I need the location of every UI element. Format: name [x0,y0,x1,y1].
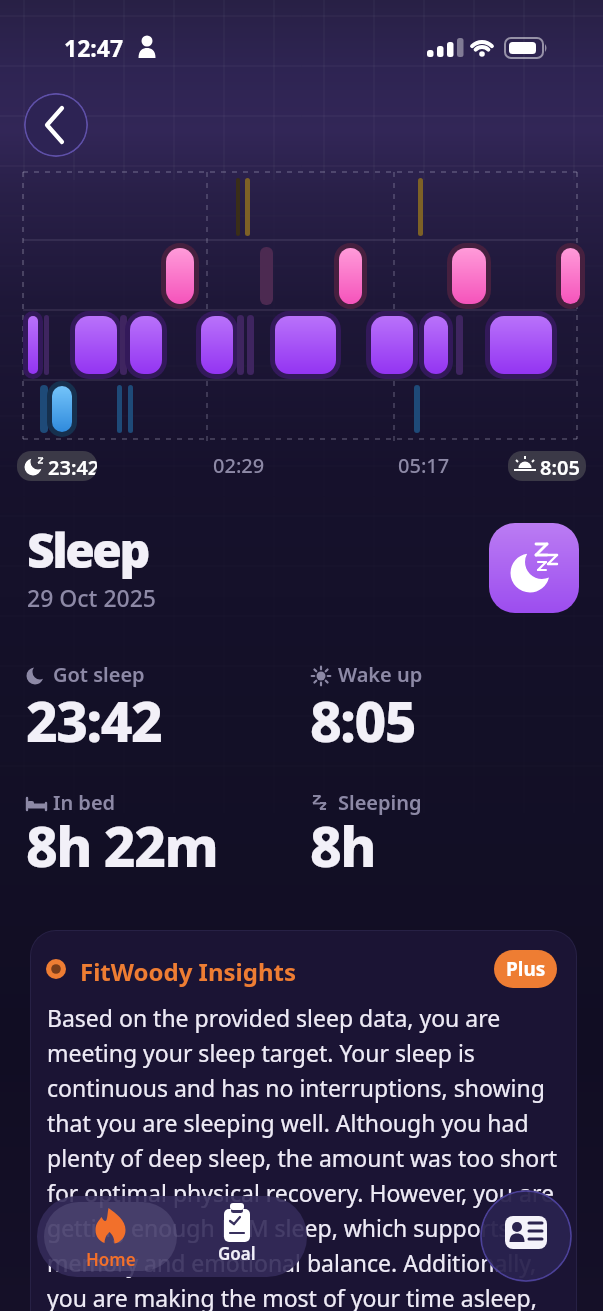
staticText: Home [86,1248,136,1271]
staticText: Plus [506,956,546,982]
button[interactable]: Goal [197,1196,307,1277]
staticText: Goal [218,1242,256,1265]
button[interactable]: Plus [494,950,557,988]
staticText: getting enough REM sleep, which supports [47,1212,510,1243]
button[interactable] [489,523,579,613]
staticText: continuous and has no interruptions, sho… [47,1072,545,1103]
staticText: you are making the most of your time asl… [47,1282,537,1311]
button[interactable] [24,93,88,157]
staticText: memory and emotional balance. Additional… [47,1247,537,1278]
staticText: FitWoody Insights [80,955,296,988]
staticText: 23:42 [48,454,97,481]
staticText: 29 Oct 2025 [27,582,157,613]
staticText: Got sleep [53,661,145,688]
staticText: 23:42 [26,683,162,758]
staticText: that you are sleeping well. Although you… [47,1107,529,1138]
staticText: 8:05 [540,454,580,481]
staticText: meeting your sleep target. Your sleep is [47,1037,475,1068]
staticText: 05:17 [398,452,450,479]
staticText: for optimal physical recovery. However, … [47,1177,554,1208]
button[interactable]: Home [44,1202,177,1271]
staticText: Sleep [27,517,148,582]
button[interactable] [480,1190,572,1282]
staticText: 02:29 [213,452,265,479]
staticText: Sleeping [338,789,422,816]
staticText: 8:05 [310,683,416,758]
staticText: 8h 22m [26,808,218,883]
staticText: plenty of deep sleep, the amount was too… [47,1142,558,1173]
staticText: 12:47 [64,32,124,63]
staticText: Wake up [338,661,423,688]
staticText: 8h [310,808,376,883]
staticText: Based on the provided sleep data, you ar… [47,1002,501,1033]
staticText: In bed [53,789,116,816]
